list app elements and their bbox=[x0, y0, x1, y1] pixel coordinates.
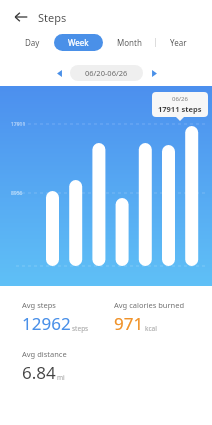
staticText: Avg distance bbox=[22, 349, 67, 359]
button[interactable]: 06/20-06/26 bbox=[70, 65, 143, 81]
button[interactable]: Day bbox=[22, 34, 43, 51]
staticText: 12962 bbox=[22, 312, 71, 335]
button[interactable]: Back bbox=[8, 4, 34, 30]
staticText: steps bbox=[72, 324, 89, 333]
staticText: 17911 steps bbox=[158, 104, 202, 114]
button[interactable]: Year bbox=[167, 34, 190, 51]
staticText: Day bbox=[25, 37, 40, 48]
staticText: Month bbox=[117, 37, 142, 48]
staticText: kcal bbox=[145, 324, 157, 333]
staticText: Year bbox=[170, 37, 187, 48]
staticText: Steps bbox=[38, 10, 67, 25]
staticText: 17911 bbox=[11, 121, 26, 128]
button[interactable]: Avg calories burned bbox=[114, 300, 212, 335]
staticText: 6.84 bbox=[22, 361, 56, 384]
staticText: mi bbox=[57, 373, 65, 382]
staticText: 06/20-06/26 bbox=[85, 68, 128, 78]
button[interactable]: Avg steps bbox=[22, 300, 114, 335]
button[interactable]: Week bbox=[54, 34, 103, 51]
button[interactable]: Previous week bbox=[51, 65, 67, 81]
button[interactable]: Month bbox=[114, 34, 145, 51]
staticText: 971 bbox=[114, 312, 144, 335]
staticText: Avg steps bbox=[22, 300, 56, 310]
button[interactable]: Next week bbox=[146, 65, 162, 81]
staticText: Week bbox=[68, 37, 89, 48]
staticText: 06/26 bbox=[172, 95, 188, 103]
button[interactable]: Avg distance bbox=[22, 349, 114, 384]
staticText: 8956 bbox=[11, 190, 23, 197]
staticText: Avg calories burned bbox=[114, 300, 185, 310]
